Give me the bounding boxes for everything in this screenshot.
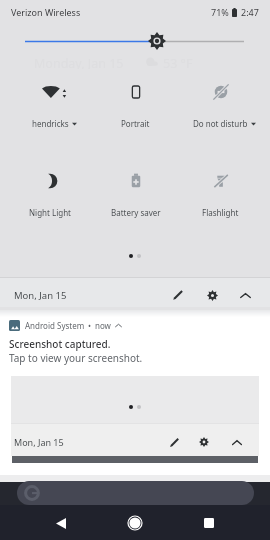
- button[interactable]: Google Search: [17, 481, 254, 505]
- button[interactable]: Android System: [0, 316, 270, 372]
- button[interactable]: Collapse: [232, 282, 258, 308]
- button[interactable]: Edit: [165, 282, 191, 308]
- staticText: hendricks: [32, 118, 69, 129]
- staticText: 71%: [211, 6, 229, 18]
- button[interactable]: Flashlight: [178, 207, 263, 218]
- staticText: 2:47: [241, 6, 259, 18]
- button[interactable]: Battery saver: [93, 207, 178, 218]
- staticText: Verizon Wireless: [11, 6, 81, 18]
- button[interactable]: Home: [119, 507, 151, 539]
- staticText: Screenshot captured.: [9, 337, 111, 351]
- staticText: Do not disturb: [193, 118, 248, 129]
- button[interactable]: Recents: [193, 507, 225, 539]
- button[interactable]: Mon, Jan 15: [14, 289, 67, 302]
- staticText: Night Light: [29, 207, 71, 218]
- staticText: Tap to view your screenshot.: [9, 351, 143, 365]
- staticText: Mon, Jan 15: [14, 289, 67, 302]
- button[interactable]: Do not disturb: [178, 118, 263, 129]
- staticText: Flashlight: [202, 207, 239, 218]
- staticText: Portrait: [121, 118, 150, 129]
- button[interactable]: hendricks: [7, 118, 93, 129]
- button[interactable]: Back: [45, 507, 77, 539]
- staticText: •: [88, 320, 92, 331]
- button[interactable]: Night Light: [7, 207, 93, 218]
- button[interactable]: Portrait: [93, 118, 178, 129]
- button[interactable]: Edit: [161, 429, 187, 455]
- staticText: Mon, Jan 15: [14, 436, 64, 448]
- staticText: Battery saver: [111, 207, 161, 218]
- button[interactable]: Collapse: [224, 429, 250, 455]
- staticText: Android System: [25, 320, 85, 331]
- button[interactable]: Settings: [191, 429, 217, 455]
- staticText: now: [95, 320, 111, 331]
- button[interactable]: Mon, Jan 15: [14, 436, 64, 448]
- button[interactable]: Settings: [199, 282, 225, 308]
